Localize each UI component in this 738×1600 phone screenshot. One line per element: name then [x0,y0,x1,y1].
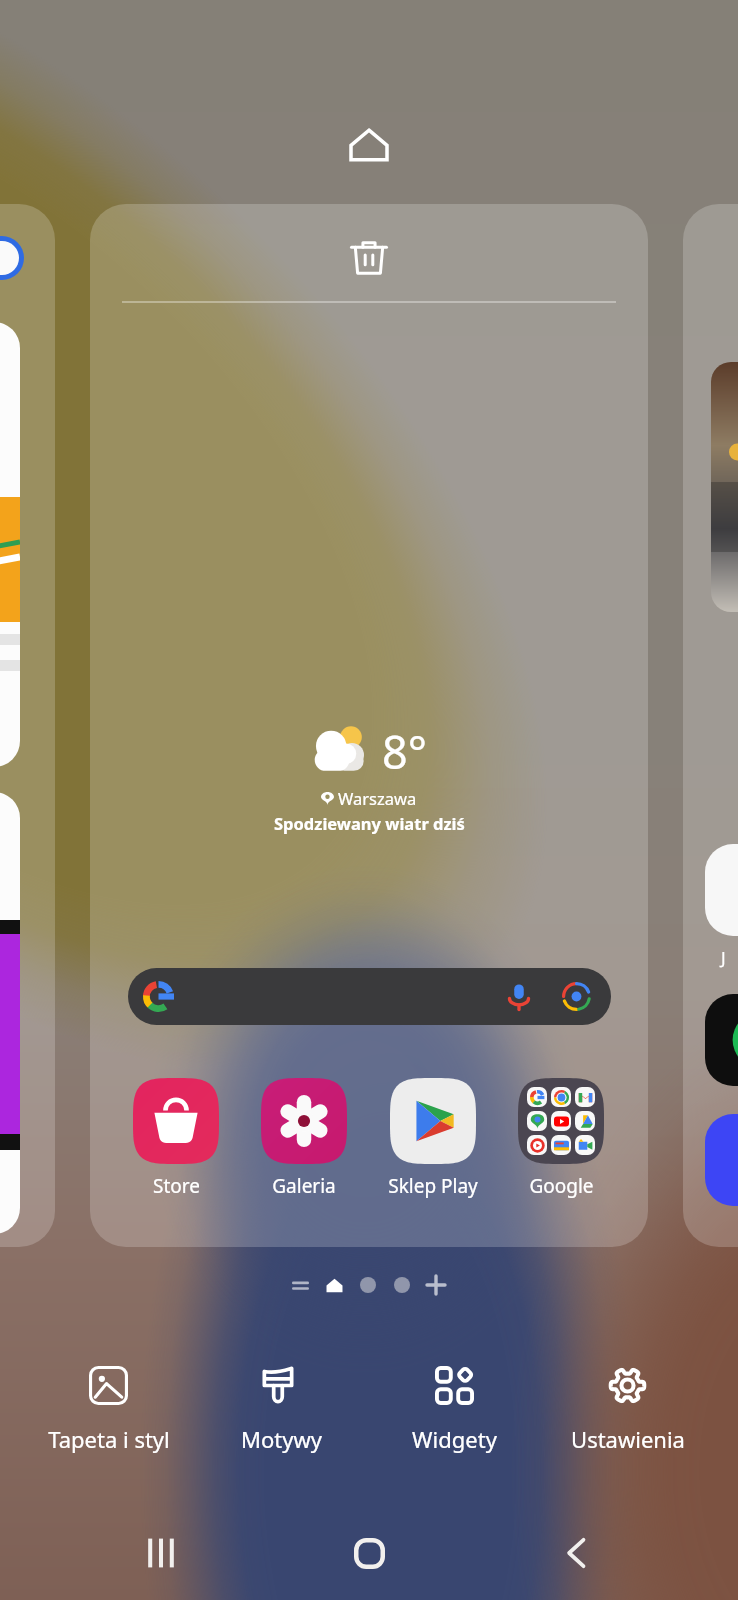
staticText: Ustawienia [571,1424,685,1454]
staticText: J [721,946,726,969]
staticText: Store [153,1173,200,1199]
staticText: Google [529,1173,594,1199]
staticText: Spodziewany wiatr dziś [274,812,465,834]
button[interactable]: Recents [121,1513,201,1593]
button[interactable]: Page 3 [385,1268,419,1302]
button[interactable]: Home screen [340,118,398,176]
button[interactable]: Back [536,1513,616,1593]
button[interactable]: Galeria [249,1078,359,1199]
button[interactable]: Store [121,1078,231,1199]
button[interactable]: Google [506,1078,616,1199]
button[interactable]: Home page [317,1268,351,1302]
button[interactable]: Widgety [372,1360,537,1460]
button[interactable]: App list [283,1268,317,1302]
button[interactable]: Sklep Play [378,1078,488,1199]
button[interactable]: Page 2 [351,1268,385,1302]
button[interactable] [128,968,611,1025]
staticText: Sklep Play [388,1173,478,1199]
button[interactable]: Motywy [199,1360,364,1460]
button[interactable]: Add page [419,1268,453,1302]
staticText: Widgety [412,1424,497,1454]
button[interactable]: Ustawienia [545,1360,710,1460]
button[interactable] [0,204,55,1247]
button[interactable]: Home [329,1513,409,1593]
button[interactable]: Tapeta i styl [26,1360,191,1460]
staticText: Motywy [241,1424,322,1454]
staticText: Galeria [272,1173,336,1199]
staticText: Warszawa [338,787,417,809]
button[interactable]: J [683,204,738,1247]
button[interactable]: Remove page [337,226,401,290]
staticText: 8° [382,721,428,782]
staticText: Tapeta i styl [48,1424,170,1454]
